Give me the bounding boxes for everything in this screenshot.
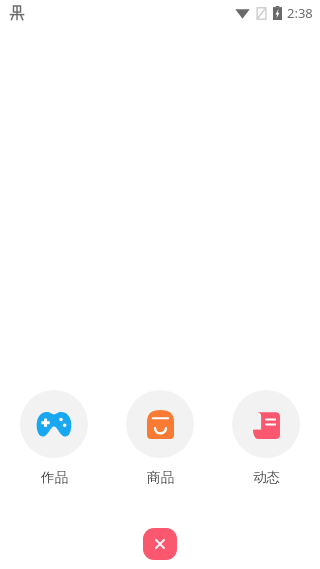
button[interactable]: 作品 [20, 390, 88, 486]
staticText: 动态 [253, 469, 280, 486]
staticText: 2:38 [287, 4, 313, 22]
staticText: 商品 [147, 469, 174, 486]
button[interactable]: 商品 [126, 390, 194, 486]
other: App logo [9, 5, 25, 21]
button[interactable]: Close [143, 528, 177, 560]
button[interactable]: 动态 [232, 390, 300, 486]
staticText: 作品 [41, 469, 68, 486]
